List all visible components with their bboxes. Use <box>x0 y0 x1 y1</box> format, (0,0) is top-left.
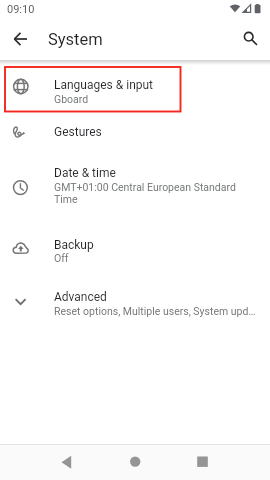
staticText: Gboard <box>54 93 89 105</box>
staticText: Date & time <box>54 166 116 180</box>
button[interactable] <box>238 26 262 50</box>
staticText: System <box>48 30 103 49</box>
staticText: Languages & input <box>54 78 154 92</box>
button[interactable] <box>6 25 35 54</box>
staticText: 09:10 <box>7 3 35 16</box>
staticText: Gestures <box>54 125 102 139</box>
button[interactable]: Languages & input <box>0 61 270 114</box>
button[interactable] <box>121 447 150 476</box>
staticText: Time <box>54 193 78 205</box>
staticText: Reset options, Multiple users, System up… <box>54 305 256 317</box>
staticText: Off <box>54 252 69 264</box>
button[interactable]: Advanced <box>0 282 270 330</box>
button[interactable]: Backup <box>0 216 270 282</box>
staticText: Advanced <box>54 290 107 304</box>
staticText: GMT+01:00 Central European Standard <box>54 181 236 193</box>
staticText: Backup <box>54 238 94 252</box>
button[interactable]: Gestures <box>0 114 270 150</box>
button[interactable] <box>188 447 217 476</box>
button[interactable]: Date & time <box>0 150 270 216</box>
button[interactable] <box>52 447 81 476</box>
